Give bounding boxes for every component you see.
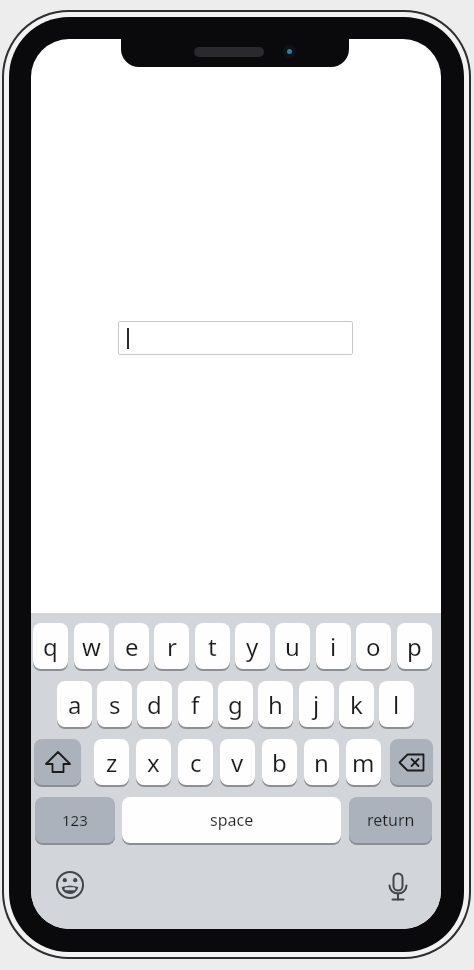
- button[interactable]: b: [262, 739, 297, 785]
- staticText: b: [272, 746, 287, 779]
- staticText: h: [268, 688, 283, 721]
- staticText: f: [191, 688, 200, 721]
- staticText: z: [106, 746, 118, 779]
- button[interactable]: f: [178, 681, 213, 727]
- staticText: j: [313, 688, 320, 721]
- staticText: o: [366, 630, 381, 663]
- staticText: m: [352, 746, 375, 779]
- staticText: x: [147, 746, 160, 779]
- staticText: return: [367, 809, 415, 831]
- button[interactable]: [383, 871, 413, 905]
- staticText: a: [68, 688, 82, 721]
- button[interactable]: r: [154, 623, 189, 669]
- button[interactable]: v: [220, 739, 255, 785]
- staticText: u: [285, 630, 300, 663]
- button[interactable]: p: [397, 623, 432, 669]
- staticText: r: [167, 630, 177, 663]
- staticText: i: [330, 630, 337, 663]
- button[interactable]: space: [122, 797, 341, 843]
- staticText: l: [393, 688, 400, 721]
- staticText: v: [231, 746, 244, 779]
- button[interactable]: m: [346, 739, 381, 785]
- button[interactable]: q: [33, 623, 68, 669]
- button[interactable]: j: [299, 681, 334, 727]
- button[interactable]: l: [379, 681, 414, 727]
- staticText: c: [190, 746, 202, 779]
- button[interactable]: [390, 739, 433, 785]
- button[interactable]: c: [178, 739, 213, 785]
- button[interactable]: d: [137, 681, 172, 727]
- button[interactable]: a: [57, 681, 92, 727]
- button[interactable]: e: [114, 623, 149, 669]
- button[interactable]: y: [235, 623, 270, 669]
- button[interactable]: [118, 321, 353, 355]
- button[interactable]: t: [195, 623, 230, 669]
- staticText: d: [147, 688, 162, 721]
- button[interactable]: 123: [35, 797, 115, 843]
- button[interactable]: [34, 739, 81, 785]
- staticText: t: [208, 630, 217, 663]
- button[interactable]: return: [349, 797, 432, 843]
- staticText: g: [228, 688, 243, 721]
- staticText: q: [43, 630, 58, 663]
- button[interactable]: i: [316, 623, 351, 669]
- staticText: p: [407, 630, 422, 663]
- button[interactable]: u: [275, 623, 310, 669]
- button[interactable]: z: [94, 739, 129, 785]
- button[interactable]: o: [356, 623, 391, 669]
- button[interactable]: x: [136, 739, 171, 785]
- staticText: y: [246, 630, 259, 663]
- staticText: e: [125, 630, 139, 663]
- staticText: s: [109, 688, 121, 721]
- staticText: 123: [62, 810, 88, 830]
- staticText: space: [210, 809, 254, 831]
- button[interactable]: k: [339, 681, 374, 727]
- button[interactable]: g: [218, 681, 253, 727]
- button[interactable]: h: [258, 681, 293, 727]
- button[interactable]: [55, 870, 85, 900]
- staticText: k: [350, 688, 363, 721]
- staticText: w: [82, 630, 101, 663]
- button[interactable]: w: [74, 623, 109, 669]
- staticText: n: [314, 746, 329, 779]
- button[interactable]: s: [97, 681, 132, 727]
- button[interactable]: n: [304, 739, 339, 785]
